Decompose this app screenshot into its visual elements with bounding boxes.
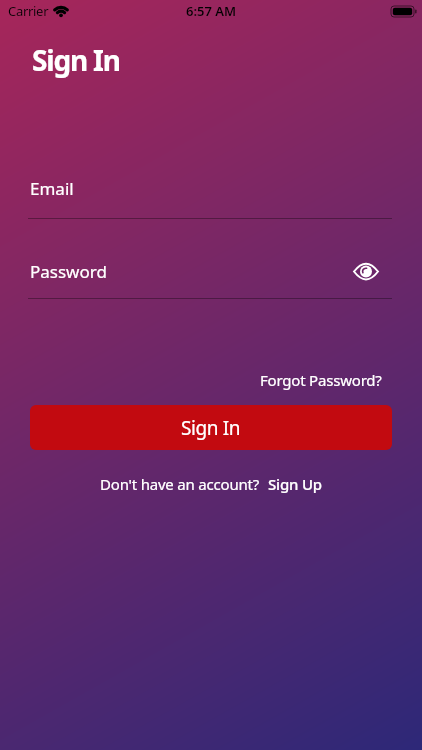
staticText: Sign In	[181, 415, 241, 441]
button[interactable]: Sign Up	[268, 474, 322, 494]
staticText: Password	[30, 260, 107, 283]
button[interactable]: Sign In	[30, 405, 392, 450]
staticText: 6:57 AM	[186, 2, 237, 20]
staticText: Don't have an account?	[100, 474, 260, 494]
staticText: Sign In	[32, 41, 120, 79]
button[interactable]	[354, 264, 378, 279]
button[interactable]: Password	[0, 246, 422, 296]
staticText: Carrier	[8, 2, 49, 20]
button[interactable]: Forgot Password?	[260, 370, 382, 390]
staticText: Forgot Password?	[260, 370, 382, 390]
button[interactable]: Email	[0, 163, 422, 213]
staticText: Email	[30, 177, 74, 200]
staticText: Sign Up	[268, 474, 322, 494]
